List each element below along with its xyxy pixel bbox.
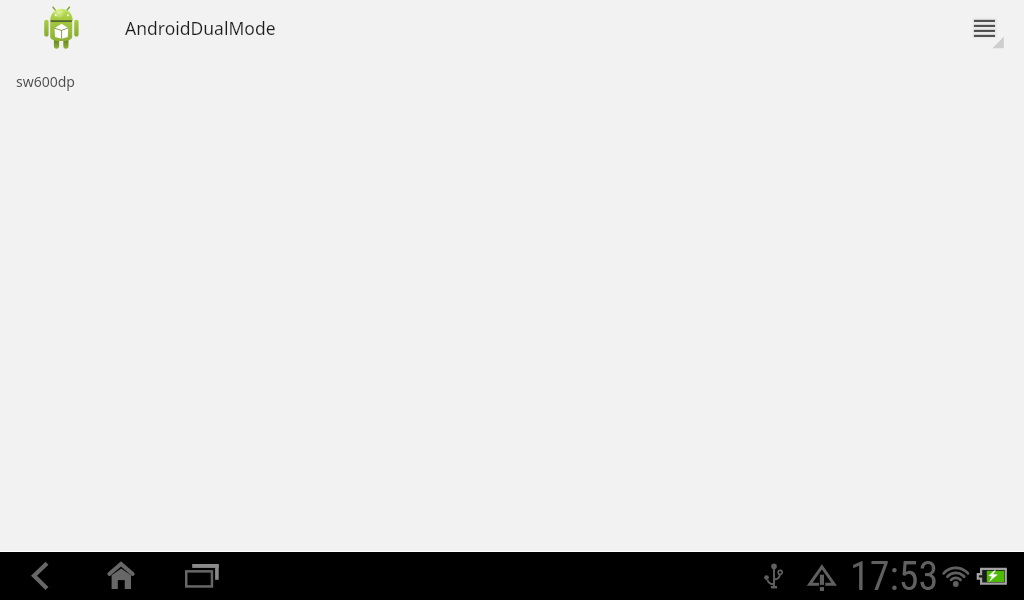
button[interactable]: Back [16,555,66,597]
button[interactable]: AndroidDualMode, navigate home [30,0,286,56]
staticText: 17:53 [850,553,939,600]
staticText: AndroidDualMode [125,16,276,40]
button[interactable]: Home [96,555,146,597]
button[interactable]: Recent apps [177,555,227,597]
button[interactable]: System status: USB connected, alert, 17:… [750,552,1024,600]
button[interactable]: More options [966,12,1010,54]
staticText: sw600dp [16,72,75,91]
